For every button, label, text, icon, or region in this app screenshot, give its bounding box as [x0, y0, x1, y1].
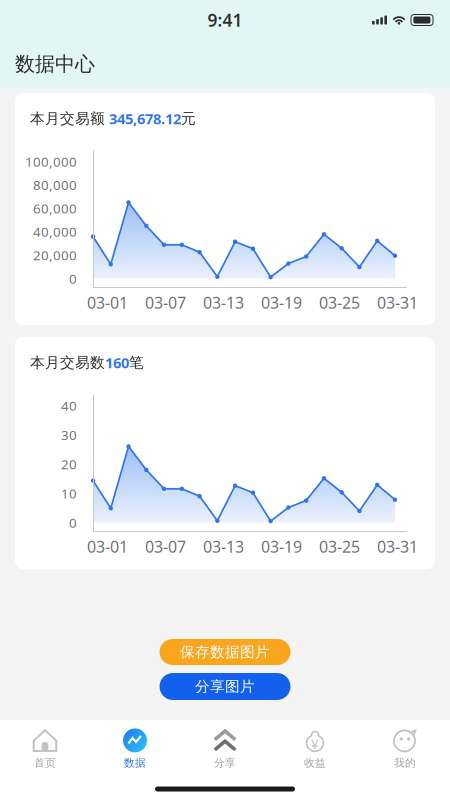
staticText: 首页	[34, 756, 56, 769]
staticText: 60,000	[33, 199, 77, 217]
staticText: 03-01	[87, 292, 128, 313]
staticText: 03-25	[319, 536, 360, 557]
staticText: 分享	[214, 756, 236, 769]
staticText: 100,000	[25, 153, 77, 170]
staticText: 我的	[394, 756, 416, 769]
staticText: 本月交易额	[30, 109, 105, 127]
staticText: ¥	[311, 735, 319, 753]
button[interactable]: 首页	[0, 720, 90, 778]
button[interactable]: 数据	[90, 720, 180, 778]
staticText: 20	[61, 455, 77, 473]
staticText: 160	[105, 353, 129, 372]
staticText: 03-01	[87, 536, 128, 557]
staticText: 03-19	[261, 292, 302, 313]
staticText: 03-13	[203, 292, 244, 313]
staticText: 03-19	[261, 536, 302, 557]
staticText: 20,000	[33, 246, 77, 264]
staticText: 03-25	[319, 292, 360, 313]
staticText: 保存数据图片	[180, 643, 270, 661]
staticText: 40,000	[33, 223, 77, 240]
staticText: 03-31	[377, 292, 418, 313]
button[interactable]: 分享	[180, 720, 270, 778]
staticText: 03-07	[145, 536, 186, 557]
button[interactable]: 保存数据图片	[159, 639, 290, 665]
staticText: 本月交易数	[30, 353, 105, 371]
staticText: 10	[61, 484, 77, 502]
staticText: 9:41	[207, 8, 242, 31]
staticText: 40	[61, 397, 77, 414]
staticText: 80,000	[33, 176, 77, 194]
staticText: 数据	[124, 756, 146, 769]
staticText: 0	[69, 514, 77, 531]
staticText: 数据中心	[15, 52, 95, 76]
staticText: 收益	[304, 756, 326, 769]
button[interactable]: 我的	[360, 720, 450, 778]
button[interactable]: 分享图片	[159, 673, 290, 700]
staticText: 笔	[129, 353, 144, 371]
staticText: 分享图片	[195, 677, 255, 695]
staticText: 元	[181, 109, 196, 127]
staticText: 30	[61, 426, 77, 444]
staticText: 345,678.12	[105, 109, 181, 128]
staticText: 03-07	[145, 292, 186, 313]
staticText: 0	[69, 270, 77, 287]
staticText: 03-13	[203, 536, 244, 557]
button[interactable]: ¥	[270, 720, 360, 778]
staticText: 03-31	[377, 536, 418, 557]
